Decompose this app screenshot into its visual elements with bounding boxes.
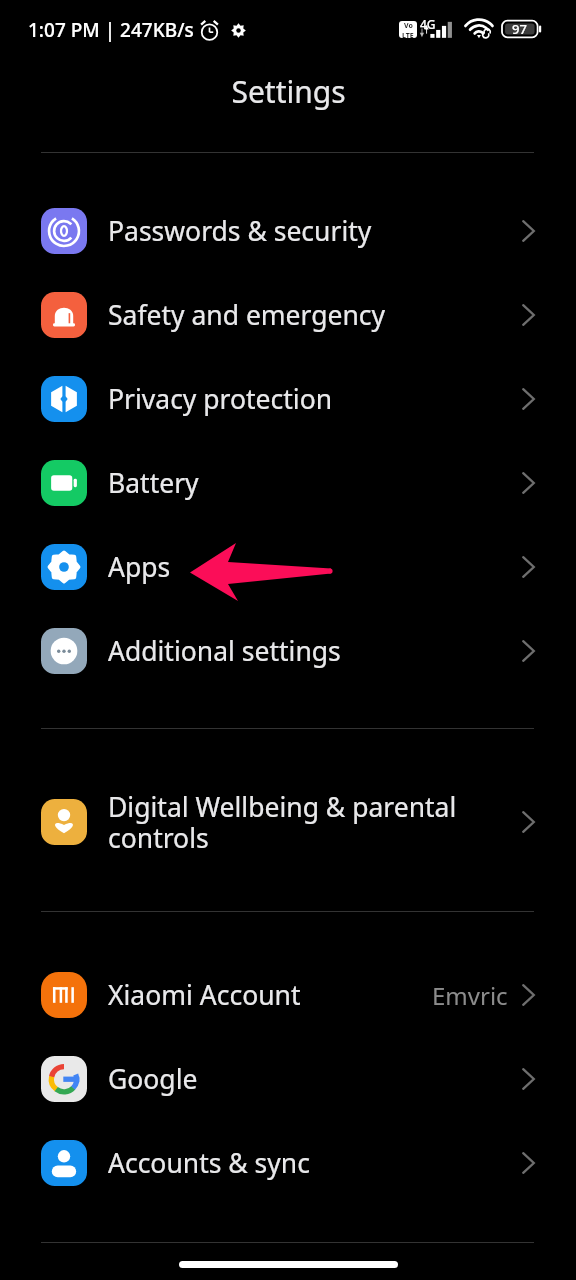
- staticText: Safety and emergency: [108, 297, 522, 333]
- staticText: 4G: [420, 16, 436, 32]
- button[interactable]: Accounts & sync: [0, 1121, 576, 1205]
- staticText: Xiaomi Account: [108, 977, 432, 1013]
- button[interactable]: Apps: [0, 525, 576, 609]
- staticText: Apps: [108, 549, 522, 585]
- staticText: LTE: [402, 31, 414, 38]
- button[interactable]: Xiaomi Account: [0, 953, 576, 1037]
- staticText: Additional settings: [108, 633, 522, 669]
- button[interactable]: Digital Wellbeing & parental controls: [0, 780, 576, 864]
- staticText: 97: [512, 20, 527, 38]
- button[interactable]: Safety and emergency: [0, 273, 576, 357]
- staticText: Privacy protection: [108, 381, 522, 417]
- button[interactable]: Alarm set: [199, 20, 220, 41]
- staticText: Digital Wellbeing & parental controls: [108, 789, 468, 855]
- button[interactable]: Passwords & security: [0, 189, 576, 273]
- staticText: Vo: [404, 21, 413, 31]
- staticText: Emvric: [432, 979, 508, 1012]
- staticText: Google: [108, 1061, 522, 1097]
- button[interactable]: Battery: [0, 441, 576, 525]
- button[interactable]: Privacy protection: [0, 357, 576, 441]
- button[interactable]: Google: [0, 1037, 576, 1121]
- staticText: 1:07 PM | 247KB/s: [28, 17, 194, 43]
- staticText: Battery: [108, 465, 522, 501]
- button[interactable]: Settings shortcut: [231, 23, 246, 38]
- staticText: Settings: [231, 71, 346, 112]
- staticText: Accounts & sync: [108, 1145, 522, 1181]
- staticText: Passwords & security: [108, 213, 522, 249]
- button[interactable]: Additional settings: [0, 609, 576, 693]
